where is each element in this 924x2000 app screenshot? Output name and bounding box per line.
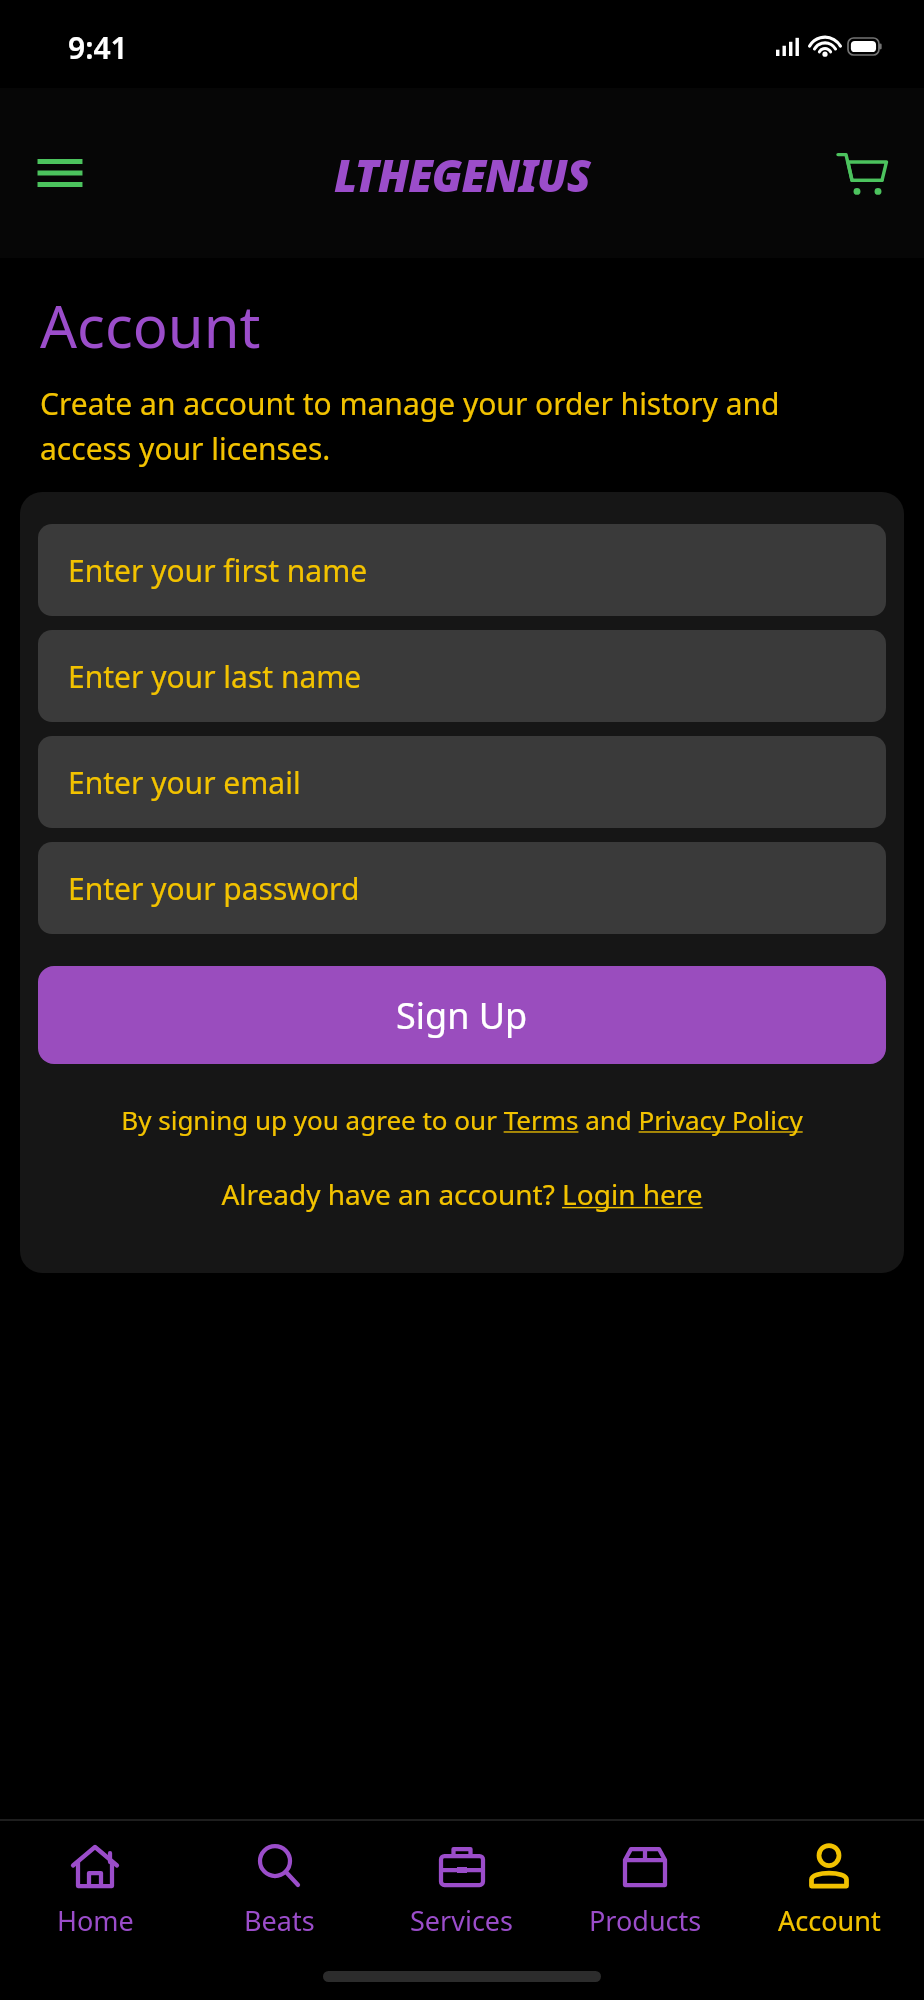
button[interactable]: Enter your last name bbox=[38, 630, 886, 722]
button[interactable]: Menu bbox=[28, 141, 92, 205]
button[interactable]: Beats bbox=[191, 1820, 367, 1960]
staticText: Beats bbox=[244, 1902, 315, 1939]
staticText: By signing up you agree to our Terms and… bbox=[121, 1102, 803, 1137]
button[interactable]: Home bbox=[7, 1820, 183, 1960]
staticText: Enter your last name bbox=[68, 656, 362, 697]
staticText: Products bbox=[589, 1902, 702, 1939]
button[interactable]: Enter your password bbox=[38, 842, 886, 934]
staticText: LTHEGENIUS bbox=[334, 145, 590, 205]
staticText: Sign Up bbox=[396, 991, 528, 1040]
staticText: Account bbox=[40, 286, 261, 365]
button[interactable]: Services bbox=[374, 1820, 550, 1960]
button[interactable]: Account bbox=[741, 1820, 917, 1960]
button[interactable]: Cart bbox=[828, 139, 896, 207]
staticText: Services bbox=[410, 1902, 514, 1939]
button[interactable]: Products bbox=[557, 1820, 733, 1960]
staticText: Home bbox=[57, 1902, 134, 1939]
button[interactable]: LTHEGENIUS bbox=[334, 145, 590, 205]
staticText: Account bbox=[778, 1902, 881, 1939]
staticText: Enter your first name bbox=[68, 550, 368, 591]
staticText: Create an account to manage your order h… bbox=[40, 383, 874, 468]
button[interactable]: Enter your email bbox=[38, 736, 886, 828]
staticText: Already have an account? Login here bbox=[221, 1175, 703, 1213]
button[interactable]: By signing up you agree to our Terms and… bbox=[38, 1102, 886, 1137]
staticText: Enter your email bbox=[68, 762, 301, 803]
button[interactable]: Sign Up bbox=[38, 966, 886, 1064]
button[interactable]: Already have an account? Login here bbox=[38, 1175, 886, 1213]
button[interactable]: Enter your first name bbox=[38, 524, 886, 616]
staticText: Enter your password bbox=[68, 868, 360, 909]
staticText: 9:41 bbox=[68, 27, 128, 68]
